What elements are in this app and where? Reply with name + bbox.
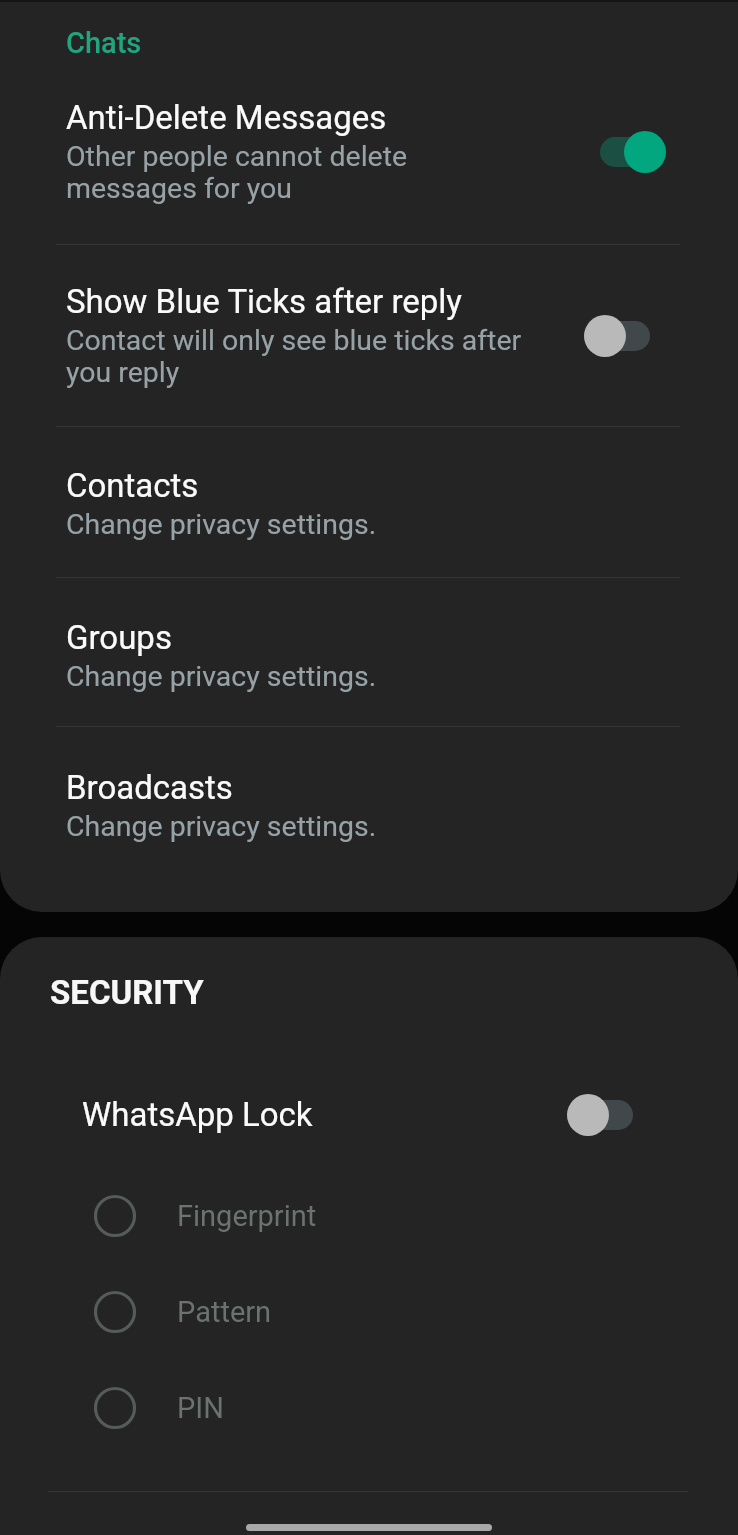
staticText: Other people cannot delete messages for … [66, 140, 536, 205]
button[interactable]: Fingerprint [0, 1168, 738, 1264]
staticText: Contact will only see blue ticks after y… [66, 324, 536, 389]
button[interactable]: Groups [0, 578, 738, 727]
staticText: Fingerprint [177, 1199, 317, 1233]
staticText: PIN [177, 1391, 224, 1425]
button[interactable]: Broadcasts [0, 727, 738, 877]
staticText: Groups [66, 618, 172, 657]
button[interactable]: WhatsApp Lock toggle [567, 1092, 633, 1138]
button[interactable]: Contacts [0, 427, 738, 578]
button[interactable]: PIN [0, 1360, 738, 1456]
staticText: Broadcasts [66, 768, 233, 807]
staticText: SECURITY [50, 973, 204, 1012]
staticText: Change privacy settings. [66, 508, 377, 541]
button[interactable]: WhatsApp Lock [0, 1068, 738, 1161]
button[interactable]: Show Blue Ticks after reply [0, 245, 738, 427]
button[interactable]: Anti-Delete Messages toggle [600, 129, 666, 175]
staticText: WhatsApp Lock [82, 1095, 313, 1134]
staticText: Pattern [177, 1295, 272, 1329]
staticText: Show Blue Ticks after reply [66, 282, 462, 321]
button[interactable]: Anti-Delete Messages [0, 76, 738, 245]
staticText: Anti-Delete Messages [66, 98, 387, 137]
button[interactable]: Pattern [0, 1264, 738, 1360]
staticText: Chats [66, 26, 142, 60]
button[interactable]: Show Blue Ticks after reply toggle [584, 313, 650, 359]
staticText: Change privacy settings. [66, 660, 377, 693]
staticText: Contacts [66, 466, 199, 505]
staticText: Change privacy settings. [66, 810, 377, 843]
